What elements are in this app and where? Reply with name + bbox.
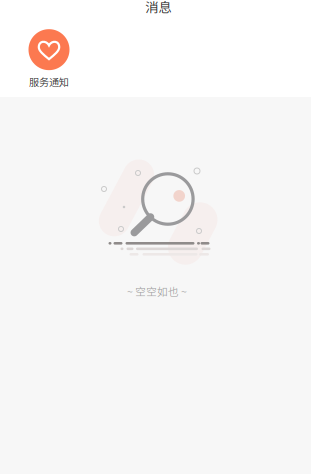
button[interactable]: 服务通知 (28, 29, 69, 89)
staticText: ~ 空空如也 ~ (127, 283, 187, 299)
staticText: 消息 (145, 0, 171, 16)
staticText: 服务通知 (29, 74, 69, 89)
